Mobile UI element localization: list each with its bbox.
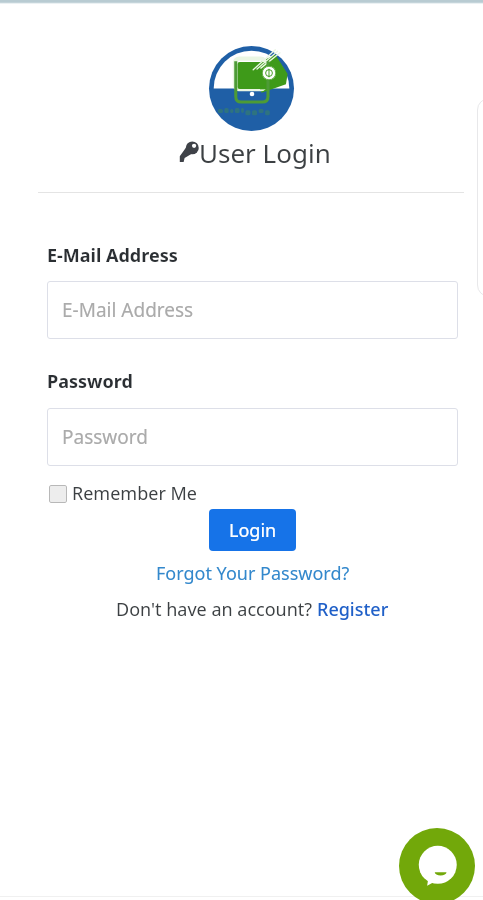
staticText: Register (317, 597, 389, 622)
staticText: Password (47, 369, 133, 394)
staticText: E-Mail Address (47, 243, 178, 268)
button[interactable]: Register (317, 597, 389, 622)
staticText: Forgot Your Password? (156, 561, 350, 586)
button[interactable]: Open chat (399, 828, 475, 900)
staticText: Password (62, 424, 148, 450)
staticText: Don't have an account? (116, 597, 317, 622)
staticText: Login (229, 518, 277, 543)
button[interactable]: Login (209, 509, 296, 551)
button[interactable]: E-Mail Address (47, 281, 458, 339)
staticText: E-Mail Address (62, 297, 194, 323)
staticText: User Login (199, 135, 331, 170)
button[interactable]: Forgot Your Password? (156, 561, 350, 586)
staticText: Remember Me (72, 481, 197, 506)
button[interactable]: Remember Me (49, 481, 197, 506)
button[interactable]: Password (47, 408, 458, 466)
